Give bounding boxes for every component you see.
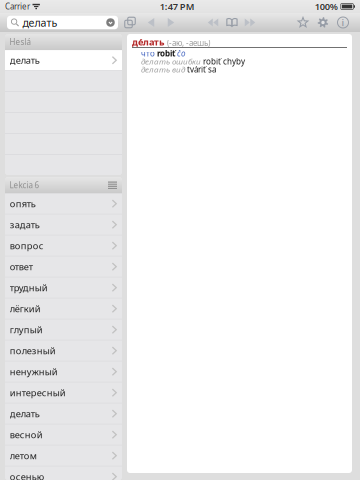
button[interactable]: глупый	[5, 319, 122, 340]
button[interactable]: Forward	[163, 14, 179, 31]
staticText: лёгкий	[10, 302, 41, 315]
button[interactable]: Next entry	[242, 14, 258, 31]
button[interactable]: Info	[335, 14, 351, 31]
button[interactable]: осенью	[5, 466, 122, 480]
button[interactable]: полезный	[5, 340, 122, 361]
staticText: Lekcia 6	[9, 180, 39, 190]
staticText: 1:47 PM	[160, 0, 195, 13]
staticText: Heslá	[9, 36, 30, 47]
staticText: что	[141, 48, 157, 59]
button[interactable]: Dictionary	[224, 14, 240, 31]
staticText: задать	[10, 218, 40, 231]
staticText: делать ошибки	[141, 56, 203, 67]
button[interactable]: ненужный	[5, 361, 122, 382]
button[interactable]: Back	[143, 14, 159, 31]
button[interactable]: задать	[5, 214, 122, 235]
staticText: делать вид	[141, 64, 187, 75]
button[interactable]: вопрос	[5, 235, 122, 256]
staticText: глупый	[10, 323, 43, 336]
staticText: i	[341, 16, 344, 28]
button[interactable]: ответ	[5, 256, 122, 277]
staticText: весной	[10, 428, 43, 441]
staticText: čo	[175, 48, 186, 59]
staticText: летом	[10, 449, 37, 462]
staticText: полезный	[10, 344, 56, 357]
staticText: ответ	[10, 260, 33, 273]
button[interactable]: весной	[5, 424, 122, 445]
staticText: tváriť sa	[187, 64, 216, 75]
staticText: трудный	[10, 281, 48, 294]
button[interactable]: опять	[5, 193, 122, 214]
staticText: опять	[10, 197, 36, 210]
staticText: вопрос	[10, 239, 44, 252]
staticText: ненужный	[10, 365, 58, 378]
staticText: robiť	[157, 48, 175, 59]
button[interactable]: Settings	[315, 14, 331, 31]
button[interactable]: лёгкий	[5, 298, 122, 319]
staticText: осенью	[10, 470, 44, 480]
staticText: 100%	[315, 0, 338, 13]
button[interactable]: Favourites	[295, 14, 311, 31]
button[interactable]: трудный	[5, 277, 122, 298]
button[interactable]: интересный	[5, 382, 122, 403]
staticText: делать	[10, 54, 40, 66]
staticText: Carrier	[5, 1, 30, 12]
button[interactable]: делать	[5, 50, 122, 70]
staticText: де́лать	[132, 36, 165, 48]
staticText: robiť chyby	[203, 56, 245, 67]
staticText: интересный	[10, 386, 66, 399]
button[interactable]: делать	[5, 403, 122, 424]
staticText: (-аю, -аешь)	[165, 38, 210, 48]
button[interactable]: Swap languages	[122, 14, 138, 31]
button[interactable]: Previous entry	[205, 14, 221, 31]
staticText: делать	[10, 407, 40, 420]
staticText: делать	[22, 15, 57, 30]
button[interactable]: летом	[5, 445, 122, 466]
